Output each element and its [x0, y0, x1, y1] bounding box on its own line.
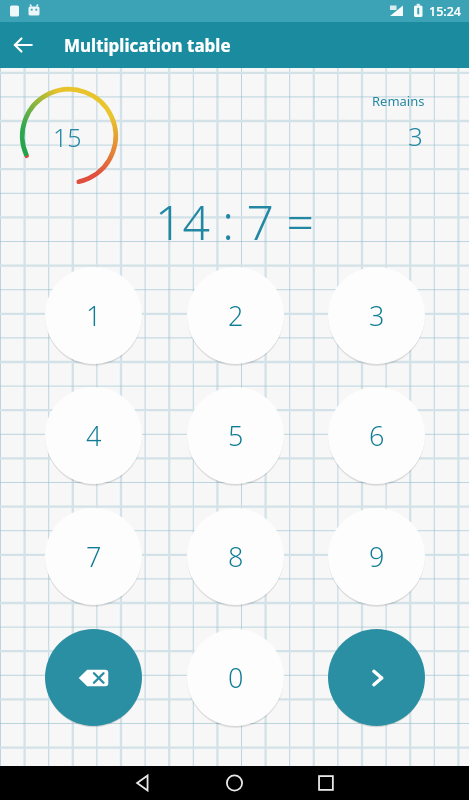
button[interactable]: 1	[45, 267, 142, 364]
staticText: 0	[228, 659, 244, 696]
button[interactable]: 3	[328, 267, 425, 364]
staticText: 3	[408, 118, 423, 153]
staticText: 3	[369, 297, 385, 334]
staticText: 14 : 7 =	[155, 189, 314, 254]
button[interactable]: 5	[187, 387, 284, 484]
staticText: 4	[86, 417, 102, 454]
button[interactable]: 4	[45, 387, 142, 484]
staticText: Multiplication table	[64, 34, 231, 57]
staticText: 2	[228, 297, 244, 334]
staticText: 7	[86, 538, 102, 575]
button[interactable]: 6	[328, 387, 425, 484]
staticText: Remains	[372, 92, 425, 110]
staticText: 5	[228, 417, 244, 454]
staticText: 6	[369, 417, 385, 454]
button[interactable]: 7	[45, 508, 142, 605]
button[interactable]: 9	[328, 508, 425, 605]
staticText: 8	[228, 538, 244, 575]
button[interactable]: 2	[187, 267, 284, 364]
button[interactable]: 0	[187, 629, 284, 726]
staticText: 15	[53, 120, 82, 154]
button[interactable]: Backspace	[45, 629, 142, 726]
staticText: 9	[369, 538, 385, 575]
staticText: 15:24	[429, 3, 462, 20]
button[interactable]: Navigate up	[0, 22, 46, 68]
staticText: 1	[86, 297, 102, 334]
button[interactable]: 8	[187, 508, 284, 605]
button[interactable]: Next	[328, 629, 425, 726]
